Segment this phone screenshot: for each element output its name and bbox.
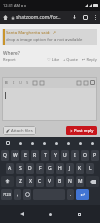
button[interactable]: S [16, 163, 24, 174]
button[interactable]: D [26, 163, 34, 174]
button[interactable]: N [66, 176, 74, 187]
button[interactable]: Attach files [3, 126, 36, 135]
button[interactable]: Q [1, 150, 9, 161]
staticText: N [68, 178, 72, 185]
button[interactable]: Keyboard tool [64, 139, 72, 147]
staticText: 12:31 AM [3, 3, 20, 8]
staticText: M [78, 178, 83, 185]
button[interactable]: F [36, 163, 44, 174]
button[interactable]: Italic [10, 79, 17, 86]
button[interactable]: Downloads [69, 12, 80, 23]
button[interactable]: Report [3, 57, 16, 62]
staticText: + Quote [63, 57, 79, 62]
button[interactable]: Back [15, 207, 29, 221]
button[interactable]: Link [38, 79, 45, 86]
staticText: V [48, 178, 52, 185]
button[interactable]: Keyboard tool [28, 139, 36, 147]
staticText: W [13, 152, 18, 159]
button[interactable]: Tabs [80, 12, 91, 23]
button[interactable]: Keyboard tool [88, 139, 96, 147]
staticText: Q [3, 152, 7, 159]
button[interactable]: Recents [72, 207, 86, 221]
staticText: Z [19, 178, 22, 185]
staticText: L [89, 165, 92, 172]
button[interactable]: Home [43, 207, 57, 221]
staticText: U [19, 80, 23, 86]
button[interactable]: G [46, 163, 54, 174]
button[interactable]: Undo [75, 79, 82, 86]
button[interactable]: Post reply [66, 126, 97, 135]
button[interactable]: X [26, 176, 34, 187]
staticText: Where? [3, 50, 20, 57]
button[interactable]: Keyboard tool [16, 139, 24, 147]
button[interactable]: V [46, 176, 54, 187]
staticText: X [29, 178, 32, 185]
button[interactable]: ?123 [1, 189, 12, 200]
button[interactable]: Keyboard tool [52, 139, 60, 147]
button[interactable]: Y [51, 150, 59, 161]
button[interactable]: C [36, 176, 44, 187]
button[interactable]: P [91, 150, 99, 161]
button[interactable]: U [61, 150, 69, 161]
staticText: E [24, 152, 27, 159]
staticText: Post reply [74, 128, 94, 134]
staticText: , [17, 191, 19, 198]
staticText: D [28, 165, 32, 172]
staticText: U [63, 152, 67, 159]
button[interactable]: ↩ Reply [82, 57, 97, 62]
button[interactable]: O [81, 150, 89, 161]
button[interactable]: Emoji [23, 189, 31, 200]
staticText: Attach files [11, 128, 33, 134]
staticText: B [58, 178, 62, 185]
button[interactable]: I [71, 150, 79, 161]
button[interactable]: Strikethrough [24, 79, 31, 86]
button[interactable]: Enter [76, 189, 89, 200]
button[interactable]: R [31, 150, 39, 161]
button[interactable]: More options [89, 79, 96, 86]
button[interactable]: Keyboard tool [4, 139, 12, 147]
button[interactable]: L [86, 163, 94, 174]
button[interactable]: Shift [1, 176, 14, 187]
button[interactable]: Backspace [86, 176, 99, 187]
button[interactable]: Underline [17, 79, 24, 86]
button[interactable]: + Quote [63, 57, 79, 62]
button[interactable]: J [66, 163, 74, 174]
button[interactable]: Keyboard tool [40, 139, 48, 147]
button[interactable]: ♡ Like [47, 57, 60, 62]
staticText: J [69, 165, 71, 172]
button[interactable]: , [14, 189, 21, 200]
button[interactable]: Text colour [31, 79, 38, 86]
button[interactable]: K [76, 163, 84, 174]
button[interactable]: A [6, 163, 14, 174]
button[interactable]: Home [0, 12, 11, 23]
button[interactable]: Redo [82, 79, 89, 86]
staticText: ♡ Like [47, 57, 60, 62]
staticText: S [26, 80, 29, 86]
button[interactable]: . [67, 189, 74, 200]
staticText: A [8, 165, 12, 172]
staticText: C [38, 178, 42, 185]
staticText: . [70, 191, 72, 198]
staticText: shatzoom.com/for... [16, 14, 61, 21]
staticText: drop a image option for a not available [6, 37, 83, 43]
button[interactable]: Z [16, 176, 24, 187]
button[interactable]: W [11, 150, 19, 161]
button[interactable]: Keyboard tool [76, 139, 84, 147]
staticText: G [48, 165, 52, 172]
staticText: F [39, 165, 42, 172]
button[interactable]: M [76, 176, 84, 187]
button[interactable]: Bold [3, 79, 10, 86]
staticText: H [58, 165, 62, 172]
staticText: O [83, 152, 87, 159]
button[interactable]: B [56, 176, 64, 187]
staticText: I [13, 80, 15, 86]
staticText: ?123 [3, 192, 11, 197]
button[interactable]: More options [91, 13, 100, 22]
button[interactable]: E [21, 150, 29, 161]
button[interactable]: H [56, 163, 64, 174]
staticText: R [33, 152, 37, 159]
staticText: B [5, 80, 8, 86]
staticText: T [44, 152, 47, 159]
button[interactable]: T [41, 150, 49, 161]
